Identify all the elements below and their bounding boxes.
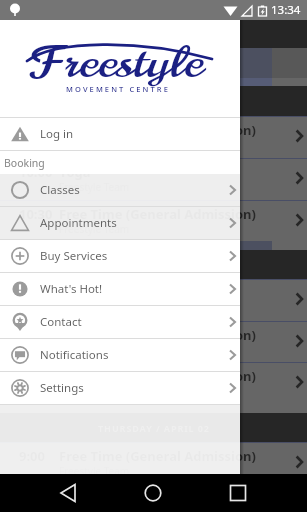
staticText: 10:00 [19,163,53,181]
staticText: Yoga [59,163,91,181]
staticText: 9:30 [19,121,45,139]
button[interactable]: Settings [0,372,240,404]
staticText: MOVEMENT CENTRE [66,84,170,94]
button[interactable]: Appointments [0,207,240,239]
staticText: Free Time (General Admission) [59,367,256,385]
staticText: Free Time (General Admission) [59,447,256,465]
staticText: Free Time (General Admission) [59,326,256,344]
button[interactable]: Buy Services [0,240,240,272]
staticText: 10:30 [19,205,53,223]
staticText: Buy Services [40,248,108,264]
staticText: Freestyle Team [59,180,130,194]
staticText: Contact [40,314,82,330]
staticText: Settings [40,380,84,396]
staticText: 9:30 [19,367,45,385]
button[interactable]: Back [48,474,88,512]
staticText: 9:00 [19,326,45,344]
staticText: What's Hot! [40,281,103,297]
staticText: Log in [40,126,74,142]
staticText: Freestyle Team [59,384,130,398]
staticText: Free Time (General Admission) [59,205,256,223]
staticText: Freestyle Team [59,464,130,478]
staticText: Freestyle Team [59,138,130,152]
button[interactable]: What's Hot! [0,273,240,305]
staticText: Free Time (General Admission) [59,121,256,139]
staticText: Freestyle Team [59,343,130,357]
staticText: Freestyle Team [59,222,130,236]
button[interactable]: Log in [0,118,240,150]
staticText: Classes [40,182,80,198]
button[interactable]: Home [133,474,173,512]
staticText: Booking [4,156,45,170]
button[interactable]: Recent apps [218,474,258,512]
button[interactable]: Notifications [0,339,240,371]
staticText: Notifications [40,347,109,363]
staticText: Freestyle [30,33,204,92]
staticText: 8:30 [19,284,45,302]
staticText: 13:34 [271,2,301,18]
staticText: Open Gym [59,284,127,302]
staticText: Appointments [40,215,117,231]
button[interactable]: Contact [0,306,240,338]
staticText: Freestyle Team [59,301,130,315]
button[interactable]: Classes [0,174,240,206]
